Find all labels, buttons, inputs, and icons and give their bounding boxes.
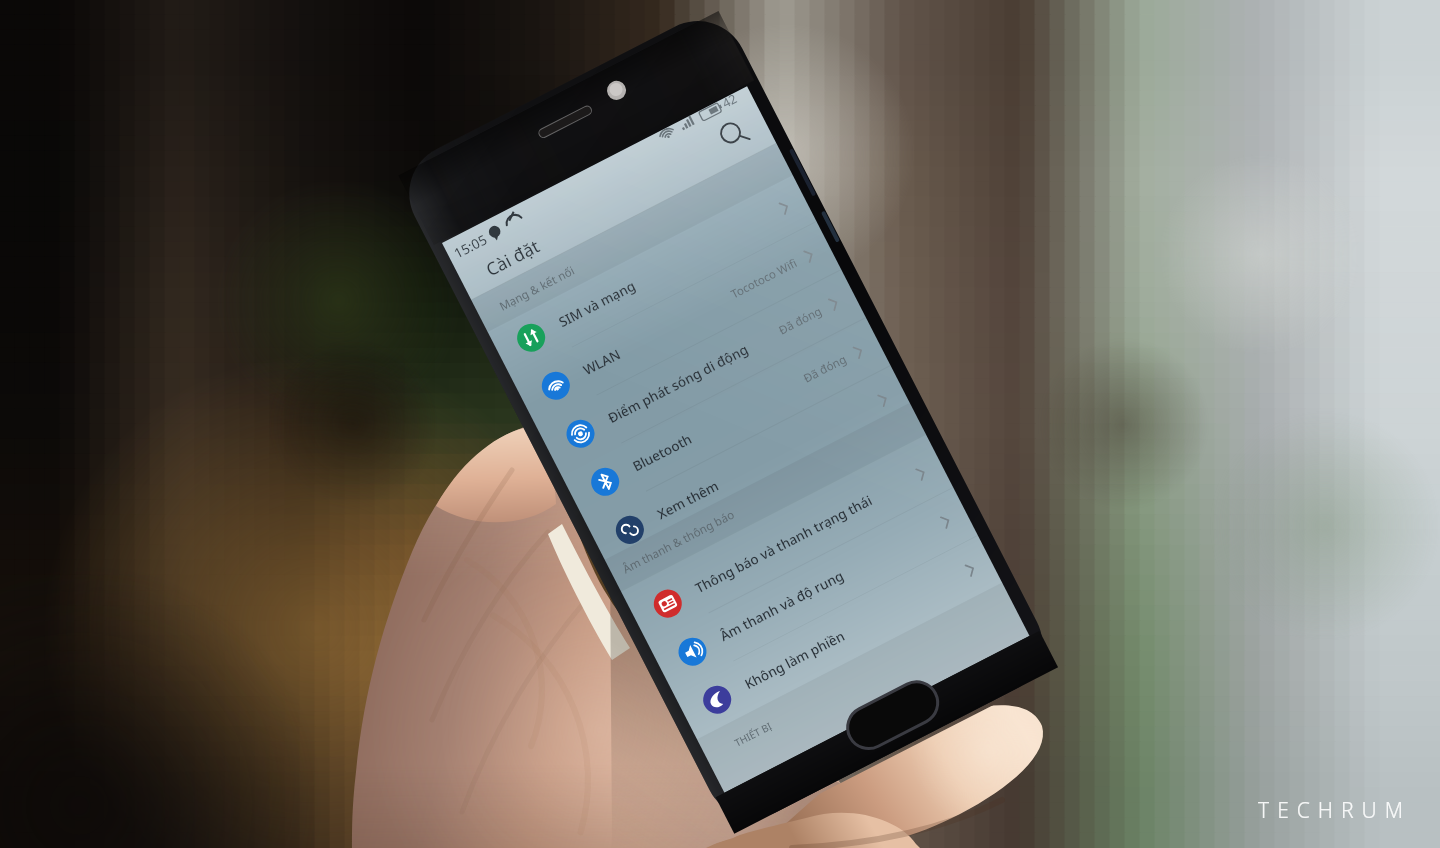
button[interactable]: Phone showing Settings: [0, 0, 1440, 848]
